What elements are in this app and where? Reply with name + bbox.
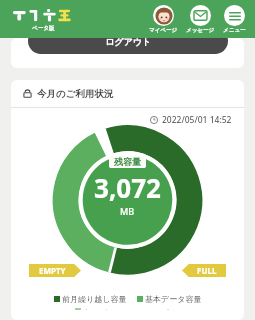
staticText: 2022/05/01 14:52 [162, 114, 232, 126]
staticText: 残容量 [114, 156, 141, 167]
staticText: 3,072 [94, 170, 161, 205]
staticText: 当月ギフト・チャージ容量 [83, 308, 181, 310]
staticText: ログアウト [105, 38, 152, 47]
staticText: 今月のご利用状況 [37, 88, 114, 100]
staticText: マイページ [149, 27, 178, 34]
staticText: メッセージ [186, 27, 215, 34]
staticText: 基本データ容量 [145, 294, 202, 304]
staticText: FULL [197, 265, 217, 276]
staticText: MB [120, 205, 135, 217]
button[interactable]: My Page [148, 5, 179, 34]
button[interactable]: 今月のご利用状況 [11, 80, 244, 107]
button[interactable]: ベータ版 [10, 5, 76, 34]
staticText: メニュー [223, 27, 246, 34]
staticText: EMPTY [39, 265, 66, 276]
staticText: 前月繰り越し容量 [62, 294, 127, 304]
button[interactable]: ログアウト [28, 38, 228, 54]
button[interactable]: Menu [222, 5, 247, 34]
staticText: ベータ版 [32, 25, 55, 32]
button[interactable]: Messages [185, 5, 216, 34]
